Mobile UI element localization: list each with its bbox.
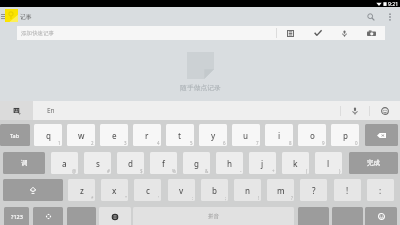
staticText: 完成	[367, 159, 380, 167]
button[interactable]: Voice input	[341, 101, 369, 120]
staticText: ;	[225, 195, 227, 201]
staticText: ?	[312, 185, 316, 196]
button[interactable]: u	[232, 124, 260, 146]
staticText: 4	[157, 140, 160, 146]
button[interactable]: g	[183, 152, 210, 174]
staticText: #	[107, 168, 110, 174]
staticText: 6	[223, 140, 226, 146]
button[interactable]: ?	[300, 179, 327, 201]
button[interactable]: ?123	[4, 207, 29, 225]
staticText: y	[211, 130, 216, 141]
staticText: n	[245, 185, 251, 196]
button[interactable]: !	[334, 179, 361, 201]
button[interactable]: i	[265, 124, 293, 146]
staticText: $	[140, 168, 143, 174]
staticText: r	[145, 130, 149, 141]
button[interactable]: :	[367, 179, 394, 201]
staticText: g	[194, 158, 199, 169]
staticText: ?123	[11, 213, 23, 220]
button[interactable]: j	[249, 152, 276, 174]
staticText: ?	[291, 195, 293, 201]
button[interactable]: v	[168, 179, 195, 201]
button[interactable]: Tab	[0, 124, 30, 146]
staticText: 2	[91, 140, 94, 146]
button[interactable]: b	[201, 179, 228, 201]
button[interactable]: Emoji	[365, 207, 397, 225]
staticText: 8	[289, 140, 292, 146]
staticText: z	[80, 185, 84, 196]
button[interactable]: s	[84, 152, 111, 174]
button[interactable]: w	[67, 124, 95, 146]
button[interactable]: z	[68, 179, 95, 201]
button[interactable]: e	[100, 124, 128, 146]
staticText: *	[91, 195, 94, 201]
button[interactable]: r	[133, 124, 161, 146]
staticText: s	[96, 158, 100, 169]
button[interactable]: 完成	[349, 152, 398, 174]
button[interactable]: y	[199, 124, 227, 146]
staticText: a	[62, 158, 67, 169]
button[interactable]: New checklist	[304, 26, 331, 40]
staticText: "	[125, 195, 127, 201]
button[interactable]: a	[51, 152, 78, 174]
button[interactable]: Emoji	[370, 101, 400, 120]
button[interactable]: f	[150, 152, 177, 174]
button[interactable]: h	[216, 152, 243, 174]
button[interactable]: More options	[382, 7, 398, 26]
staticText: -	[240, 168, 242, 174]
staticText: @	[72, 168, 77, 174]
button[interactable]: d	[117, 152, 144, 174]
staticText: 9:21	[388, 0, 399, 7]
staticText: %	[172, 168, 176, 174]
button[interactable]: 添加快速记事	[21, 30, 276, 37]
staticText: j	[261, 158, 264, 169]
button[interactable]: m	[267, 179, 294, 201]
button[interactable]: Backspace	[365, 124, 398, 146]
button[interactable]: o	[298, 124, 326, 146]
staticText: '	[158, 195, 160, 201]
staticText: 7	[256, 140, 259, 146]
button[interactable]: Menu	[0, 7, 5, 26]
staticText: v	[179, 185, 184, 196]
button[interactable]: New list	[277, 26, 304, 40]
button[interactable]: k	[282, 152, 309, 174]
staticText: l	[327, 158, 330, 169]
button[interactable]: Shift	[3, 179, 63, 201]
staticText: m	[277, 185, 285, 196]
staticText: q	[46, 130, 51, 141]
button[interactable]: Voice note	[331, 26, 358, 40]
button[interactable]: q	[34, 124, 62, 146]
staticText: b	[212, 185, 217, 196]
button[interactable]: 调	[3, 152, 45, 174]
button[interactable]: 拼音	[133, 207, 294, 225]
button[interactable]: Photo note	[358, 26, 385, 40]
staticText: k	[293, 158, 298, 169]
button[interactable]: t	[166, 124, 194, 146]
button[interactable]: Input method	[0, 101, 33, 120]
staticText: 9	[322, 140, 325, 146]
staticText: p	[343, 130, 348, 141]
button[interactable]: Keep	[5, 9, 18, 22]
button[interactable]: n	[234, 179, 261, 201]
button[interactable]: c	[134, 179, 161, 201]
staticText: :	[192, 195, 194, 201]
staticText: (	[306, 168, 308, 174]
button[interactable]: Search	[360, 7, 382, 26]
button[interactable]: l	[315, 152, 342, 174]
staticText: c	[146, 185, 150, 196]
staticText: h	[227, 158, 233, 169]
staticText: !	[258, 195, 260, 201]
staticText: !	[346, 185, 349, 196]
staticText: 3	[124, 140, 127, 146]
button[interactable]: Change language	[99, 207, 131, 225]
staticText: 0	[355, 140, 358, 146]
staticText: 1	[58, 140, 61, 146]
staticText: o	[310, 130, 315, 141]
button[interactable]: p	[331, 124, 359, 146]
button[interactable]: x	[101, 179, 128, 201]
button[interactable]: Arrow keys	[33, 207, 63, 225]
staticText: 拼音	[208, 213, 219, 220]
